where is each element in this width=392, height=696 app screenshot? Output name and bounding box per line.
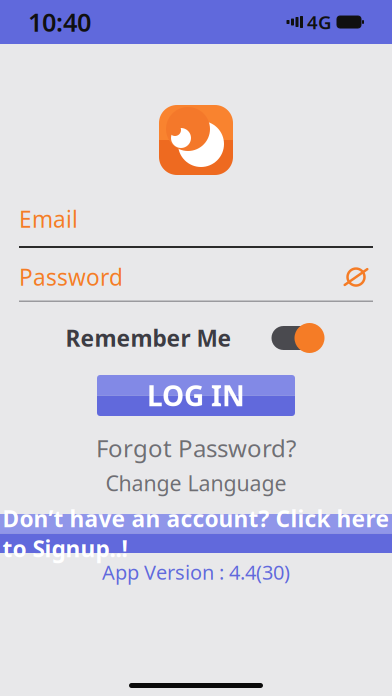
staticText: 10:40: [28, 5, 91, 39]
staticText: Remember Me: [65, 323, 231, 353]
button[interactable]: Change Language: [66, 468, 326, 498]
button[interactable]: App Version : 4.4(30): [102, 558, 290, 586]
staticText: Change Language: [105, 469, 286, 497]
staticText: Password: [19, 262, 123, 292]
staticText: 4G: [307, 10, 332, 34]
staticText: App Version : 4.4(30): [102, 559, 290, 585]
staticText: Email: [19, 204, 78, 234]
staticText: LOG IN: [147, 377, 245, 414]
staticText: Forgot Password?: [96, 432, 296, 464]
button[interactable]: Remember Me: [266, 322, 326, 354]
button[interactable]: Don’t have an account? Click here to Sig…: [0, 514, 392, 553]
button[interactable]: LOG IN: [97, 375, 295, 416]
staticText: Don’t have an account? Click here to Sig…: [2, 503, 389, 564]
button[interactable]: Forgot Password?: [66, 432, 326, 464]
button[interactable]: Show password: [339, 263, 373, 291]
